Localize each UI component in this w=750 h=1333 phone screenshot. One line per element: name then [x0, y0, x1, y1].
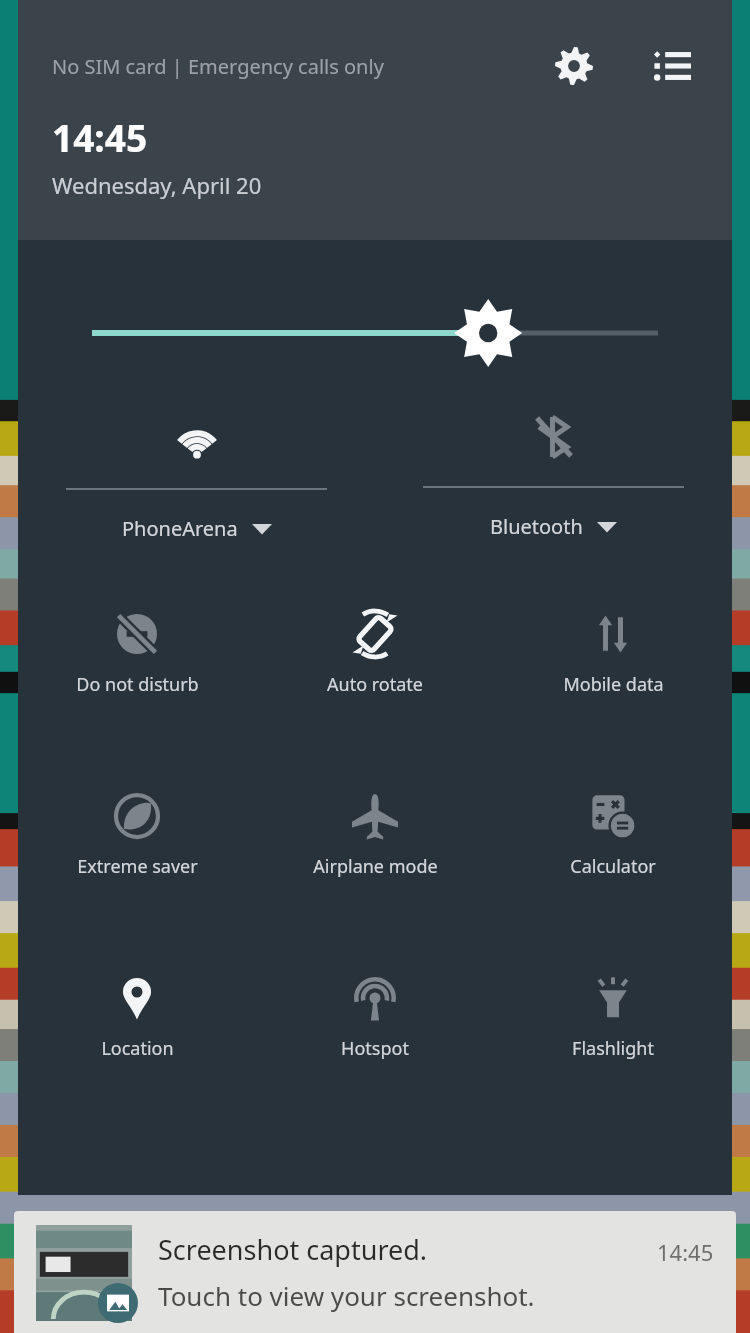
staticText: Extreme saver — [77, 854, 198, 879]
button[interactable]: Airplane mode — [256, 784, 494, 885]
button[interactable]: Extreme saver — [18, 784, 256, 885]
staticText: Calculator — [570, 854, 656, 879]
button[interactable]: Bluetooth — [375, 390, 732, 580]
button[interactable]: Auto rotate — [256, 602, 494, 703]
staticText: Hotspot — [341, 1036, 409, 1061]
staticText: Touch to view your screenshot. — [158, 1278, 535, 1313]
staticText: PhoneArena — [122, 515, 238, 542]
button[interactable]: Location — [18, 966, 256, 1067]
staticText: Bluetooth — [490, 513, 583, 540]
staticText: No SIM card | Emergency calls only — [52, 53, 384, 80]
button[interactable]: Hotspot — [256, 966, 494, 1067]
button[interactable]: Mobile data — [494, 602, 732, 703]
staticText: Flashlight — [572, 1036, 654, 1061]
button[interactable]: Do not disturb — [18, 602, 256, 703]
staticText: Auto rotate — [327, 672, 423, 697]
button[interactable]: Settings — [548, 40, 600, 92]
staticText: Wednesday, April 20 — [52, 170, 262, 200]
button[interactable]: Brightness — [18, 240, 732, 390]
button[interactable]: Calculator — [494, 784, 732, 885]
staticText: Do not disturb — [76, 672, 199, 697]
staticText: Airplane mode — [313, 854, 438, 879]
staticText: Location — [101, 1036, 174, 1061]
staticText: 14:45 — [52, 112, 148, 162]
button[interactable]: Screenshot captured. — [14, 1211, 736, 1333]
button[interactable]: PhoneArena — [18, 390, 375, 580]
staticText: Mobile data — [563, 672, 664, 697]
button[interactable]: Edit quick settings — [646, 40, 698, 92]
staticText: Screenshot captured. — [158, 1231, 428, 1268]
staticText: 14:45 — [657, 1237, 714, 1267]
button[interactable]: Flashlight — [494, 966, 732, 1067]
